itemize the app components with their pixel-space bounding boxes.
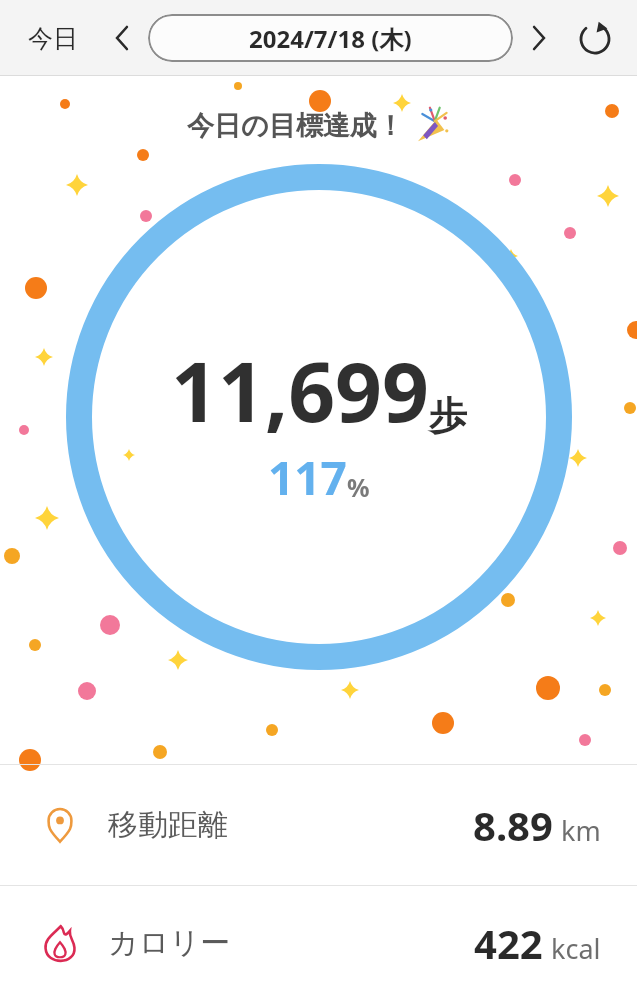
staticText: 8.89 [473,798,553,852]
button[interactable]: 移動距離 [0,765,637,885]
button[interactable]: Previous day [100,16,144,60]
button[interactable]: Next day [517,16,561,60]
staticText: 移動距離 [108,806,228,844]
button[interactable]: Refresh [571,14,619,62]
staticText: 2024/7/18 (木) [249,22,412,55]
staticText: 今日 [28,23,78,54]
button[interactable]: 今日 [18,17,88,60]
staticText: 11,699 [171,334,429,446]
staticText: 117 [268,446,347,509]
staticText: kcal [551,930,601,967]
staticText: km [561,812,601,849]
staticText: 今日の目標達成！ [187,109,404,143]
staticText: 422 [474,916,543,970]
staticText: % [347,470,370,504]
button[interactable]: カロリー [0,886,637,1000]
staticText: 歩 [429,392,467,440]
button[interactable]: 2024/7/18 (木) [148,14,513,62]
staticText: カロリー [108,924,231,962]
